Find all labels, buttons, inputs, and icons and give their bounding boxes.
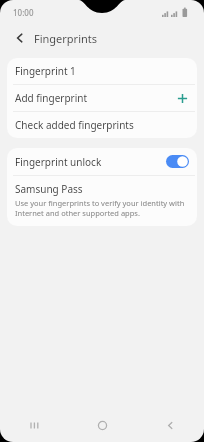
staticText: Samsung Pass bbox=[15, 182, 83, 196]
button[interactable]: Check added fingerprints bbox=[7, 112, 197, 138]
staticText: Fingerprints bbox=[34, 31, 98, 46]
button[interactable]: Fingerprint unlock bbox=[7, 148, 197, 175]
button[interactable]: Fingerprint 1 bbox=[7, 58, 197, 84]
button[interactable]: Samsung Pass bbox=[7, 176, 197, 226]
button[interactable]: Add fingerprint bbox=[7, 85, 197, 111]
staticText: Check added fingerprints bbox=[15, 118, 134, 132]
staticText: 10:00 bbox=[13, 7, 34, 18]
button[interactable]: Home bbox=[68, 408, 136, 442]
staticText: Fingerprint unlock bbox=[15, 155, 102, 169]
staticText: Use your fingerprints to verify your ide… bbox=[15, 198, 187, 218]
button[interactable]: Back bbox=[8, 26, 32, 50]
staticText: Add fingerprint bbox=[15, 91, 88, 105]
staticText: Fingerprint 1 bbox=[15, 64, 76, 78]
button[interactable]: Recents bbox=[0, 408, 68, 442]
button[interactable]: Back bbox=[136, 408, 204, 442]
